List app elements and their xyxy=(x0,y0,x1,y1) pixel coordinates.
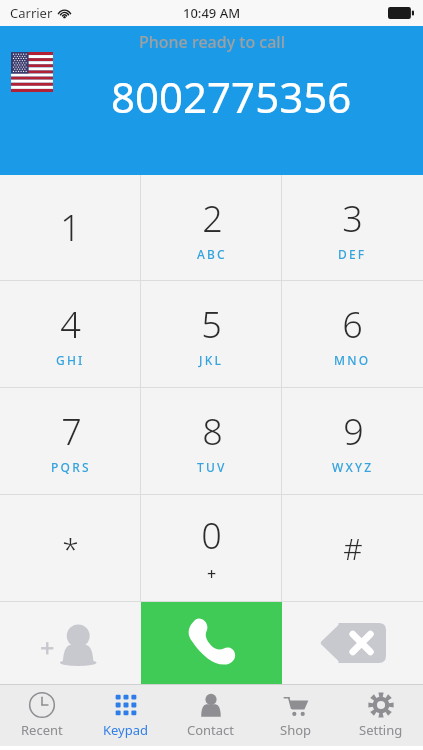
button[interactable]: Backspace xyxy=(282,602,423,684)
staticText: 10:49 AM xyxy=(183,4,241,22)
staticText: ABC xyxy=(197,246,227,262)
staticText: 8 xyxy=(202,407,223,456)
button[interactable]: Contact xyxy=(168,684,253,746)
button[interactable]: 5 xyxy=(141,281,282,387)
staticText: TUV xyxy=(197,459,227,475)
staticText: Contact xyxy=(187,721,235,739)
staticText: 3 xyxy=(342,194,363,243)
staticText: 5 xyxy=(201,300,222,349)
staticText: Phone ready to call xyxy=(139,31,285,53)
button[interactable]: Recent xyxy=(0,684,84,746)
staticText: 7 xyxy=(61,407,82,456)
button[interactable]: Call xyxy=(141,602,282,684)
staticText: Keypad xyxy=(103,721,149,739)
staticText: WXYZ xyxy=(332,459,374,475)
button[interactable]: 0 xyxy=(141,495,282,601)
staticText: MNO xyxy=(334,352,371,368)
button[interactable]: 7 xyxy=(0,388,141,494)
button[interactable]: # xyxy=(282,495,423,601)
staticText: DEF xyxy=(338,246,367,262)
staticText: 0 xyxy=(201,511,222,560)
staticText: PQRS xyxy=(51,459,91,475)
staticText: Shop xyxy=(280,721,312,739)
button[interactable]: Shop xyxy=(253,684,338,746)
staticText: JKL xyxy=(199,352,224,368)
button[interactable]: Setting xyxy=(338,684,423,746)
button[interactable]: 8 xyxy=(141,388,282,494)
staticText: 8002775356 xyxy=(111,68,352,125)
staticText: Carrier xyxy=(10,4,53,22)
button[interactable]: Keypad xyxy=(84,684,168,746)
button[interactable]: 4 xyxy=(0,281,141,387)
staticText: * xyxy=(62,528,79,569)
button[interactable]: 2 xyxy=(141,175,282,280)
staticText: 2 xyxy=(202,194,223,243)
button[interactable]: * xyxy=(0,495,141,601)
staticText: Recent xyxy=(21,721,63,739)
button[interactable]: 1 xyxy=(0,175,141,280)
staticText: 6 xyxy=(342,300,363,349)
button[interactable]: 3 xyxy=(282,175,423,280)
staticText: Setting xyxy=(359,721,403,739)
staticText: + xyxy=(207,563,217,585)
button[interactable]: Country: United States xyxy=(11,52,53,92)
staticText: 4 xyxy=(60,300,81,349)
staticText: 9 xyxy=(343,407,364,456)
staticText: GHI xyxy=(56,352,85,368)
staticText: 1 xyxy=(60,203,81,252)
button[interactable]: Add contact xyxy=(0,602,141,684)
staticText: # xyxy=(343,528,363,569)
button[interactable]: 9 xyxy=(282,388,423,494)
button[interactable]: 6 xyxy=(282,281,423,387)
